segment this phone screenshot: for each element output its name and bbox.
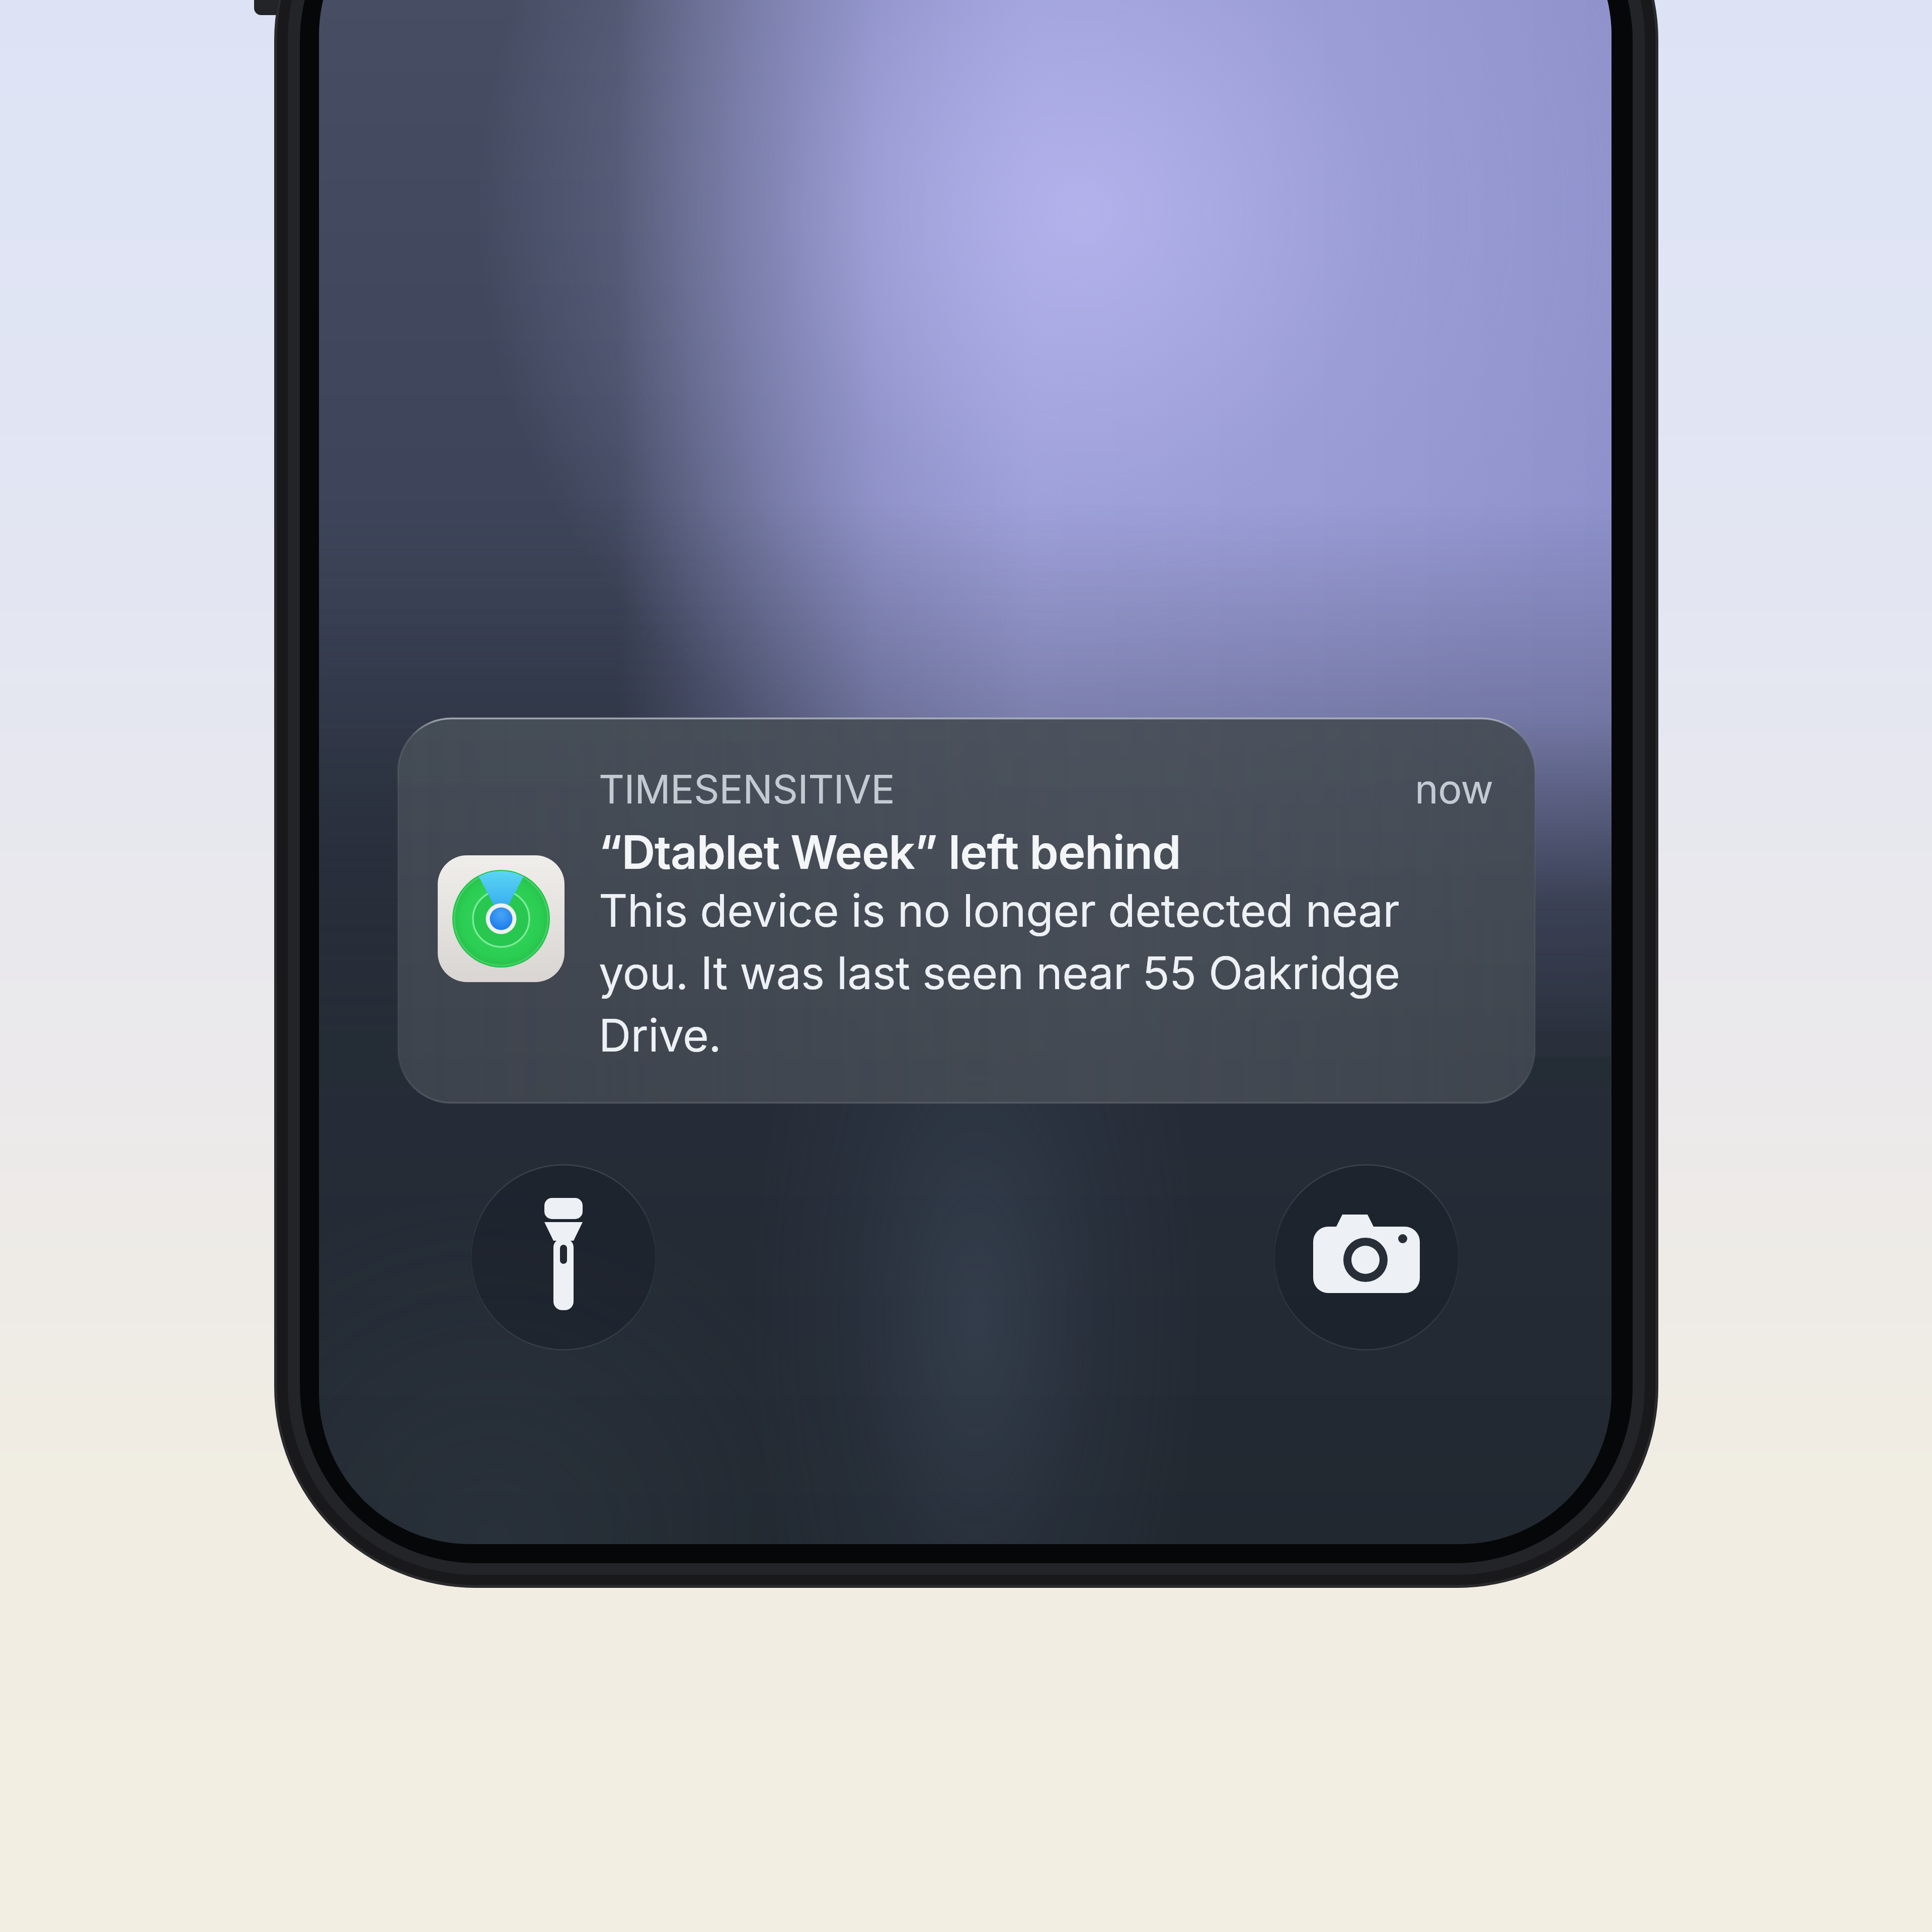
- button[interactable]: [1273, 1164, 1460, 1351]
- staticText: This device is no longer detected near y…: [599, 883, 1400, 1062]
- staticText: now: [1415, 765, 1493, 813]
- button[interactable]: [470, 1164, 657, 1351]
- button[interactable]: [398, 718, 1535, 1103]
- staticText: TIMESENSITIVE: [599, 765, 895, 813]
- staticText: “Dtablet Week” left behind: [599, 824, 1181, 880]
